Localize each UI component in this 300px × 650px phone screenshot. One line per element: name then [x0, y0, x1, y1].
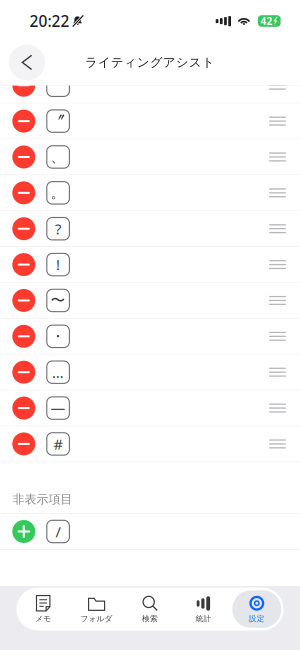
staticText: フォルダ: [81, 614, 113, 623]
staticText: !: [56, 255, 60, 275]
staticText: メモ: [35, 614, 51, 623]
staticText: #: [54, 434, 63, 454]
button[interactable]: /: [0, 514, 300, 550]
staticText: 設定: [249, 614, 265, 623]
button[interactable]: 〞: [0, 103, 300, 139]
staticText: /: [56, 521, 61, 541]
staticText: 検索: [142, 614, 158, 623]
staticText: 〜: [51, 291, 66, 310]
button[interactable]: フォルダ: [70, 588, 123, 631]
button[interactable]: 検索: [123, 588, 177, 631]
button[interactable]: Back: [5, 40, 49, 84]
button[interactable]: 設定: [230, 588, 283, 631]
button[interactable]: 統計: [177, 588, 230, 631]
staticText: 〞: [51, 112, 66, 130]
staticText: 統計: [195, 614, 211, 623]
button[interactable]: メモ: [16, 588, 70, 631]
staticText: ・: [51, 327, 66, 346]
button[interactable]: …: [0, 355, 300, 390]
button[interactable]: ―: [0, 390, 300, 426]
staticText: 非表示項目: [12, 492, 72, 507]
button[interactable]: 〜: [0, 283, 300, 319]
button[interactable]: 〝: [0, 68, 300, 103]
staticText: 42: [261, 14, 273, 28]
staticText: 20:22: [29, 10, 69, 32]
staticText: ?: [55, 219, 61, 239]
staticText: 。: [51, 184, 66, 202]
button[interactable]: !: [0, 247, 300, 283]
button[interactable]: 、: [0, 139, 300, 175]
staticText: 、: [51, 148, 66, 166]
staticText: ライティングアシスト: [85, 55, 215, 70]
button[interactable]: ・: [0, 319, 300, 355]
staticText: ―: [51, 398, 66, 418]
button[interactable]: ?: [0, 211, 300, 247]
staticText: …: [52, 362, 64, 382]
button[interactable]: #: [0, 426, 300, 462]
button[interactable]: 。: [0, 175, 300, 211]
